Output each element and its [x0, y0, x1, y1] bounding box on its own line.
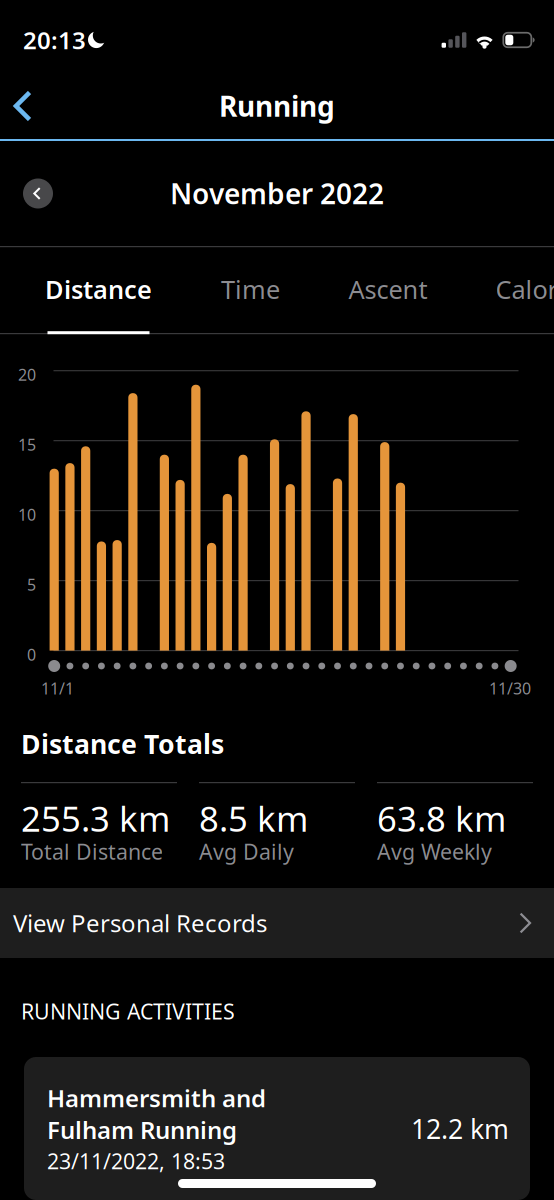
button[interactable]: Ascent [349, 247, 427, 334]
staticText: November 2022 [170, 175, 384, 212]
staticText: 20 [18, 364, 36, 385]
staticText: Fulham Running [47, 1114, 237, 1146]
staticText: 20:13 [23, 24, 86, 56]
button[interactable]: Previous month [16, 171, 60, 215]
button[interactable]: Distance [48, 247, 149, 334]
staticText: Time [221, 272, 280, 306]
staticText: Running [219, 87, 335, 125]
staticText: 8.5 km [199, 795, 308, 841]
staticText: 23/11/2022, 18:53 [47, 1147, 225, 1175]
staticText: Avg Daily [199, 837, 294, 865]
button[interactable]: Hammersmith and [24, 1057, 530, 1200]
staticText: 63.8 km [377, 795, 506, 841]
staticText: 10 [18, 504, 36, 525]
staticText: Distance [45, 272, 152, 306]
staticText: 15 [18, 434, 36, 455]
staticText: View Personal Records [13, 907, 267, 939]
button[interactable]: Back [0, 79, 50, 133]
staticText: Hammersmith and [47, 1082, 266, 1114]
staticText: Avg Weekly [377, 837, 492, 865]
button[interactable]: View Personal Records [0, 888, 554, 958]
staticText: 11/1 [41, 678, 74, 699]
staticText: Calories [495, 272, 554, 306]
staticText: Distance Totals [21, 726, 224, 761]
staticText: RUNNING ACTIVITIES [21, 997, 235, 1025]
staticText: Total Distance [21, 837, 163, 865]
staticText: 12.2 km [411, 1111, 509, 1146]
button[interactable]: Time [223, 247, 278, 334]
button[interactable]: Calories [498, 247, 554, 334]
staticText: 255.3 km [21, 795, 170, 841]
staticText: 11/30 [489, 678, 531, 699]
staticText: Ascent [348, 272, 427, 306]
staticText: 0 [27, 644, 36, 665]
staticText: 5 [27, 574, 36, 595]
